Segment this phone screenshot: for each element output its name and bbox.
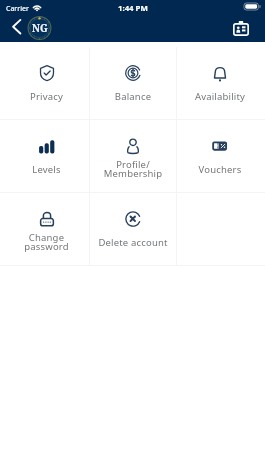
button[interactable]: Levels <box>4 120 89 192</box>
staticText: Levels <box>4 163 89 176</box>
button[interactable]: Vouchers <box>177 120 263 192</box>
staticText: Privacy <box>4 90 89 103</box>
staticText: Profile/ Membership <box>90 158 176 180</box>
staticText: Delete account <box>90 236 176 249</box>
staticText: Change password <box>4 231 89 253</box>
staticText: NG <box>32 21 48 35</box>
button[interactable]: Privacy <box>4 47 89 119</box>
staticText: Availability <box>177 90 263 103</box>
staticText: Vouchers <box>177 163 263 176</box>
button[interactable]: Membership card <box>229 16 253 40</box>
button[interactable]: Back <box>0 18 26 42</box>
staticText: Balance <box>90 90 176 103</box>
staticText: Carrier <box>6 4 29 14</box>
button[interactable]: Profile/ Membership <box>90 120 176 192</box>
staticText: 1:44 PM <box>118 3 148 14</box>
button[interactable]: Balance <box>90 47 176 119</box>
button[interactable]: Delete account <box>90 193 176 265</box>
button[interactable]: Change password <box>4 193 89 265</box>
button[interactable]: Availability <box>177 47 263 119</box>
